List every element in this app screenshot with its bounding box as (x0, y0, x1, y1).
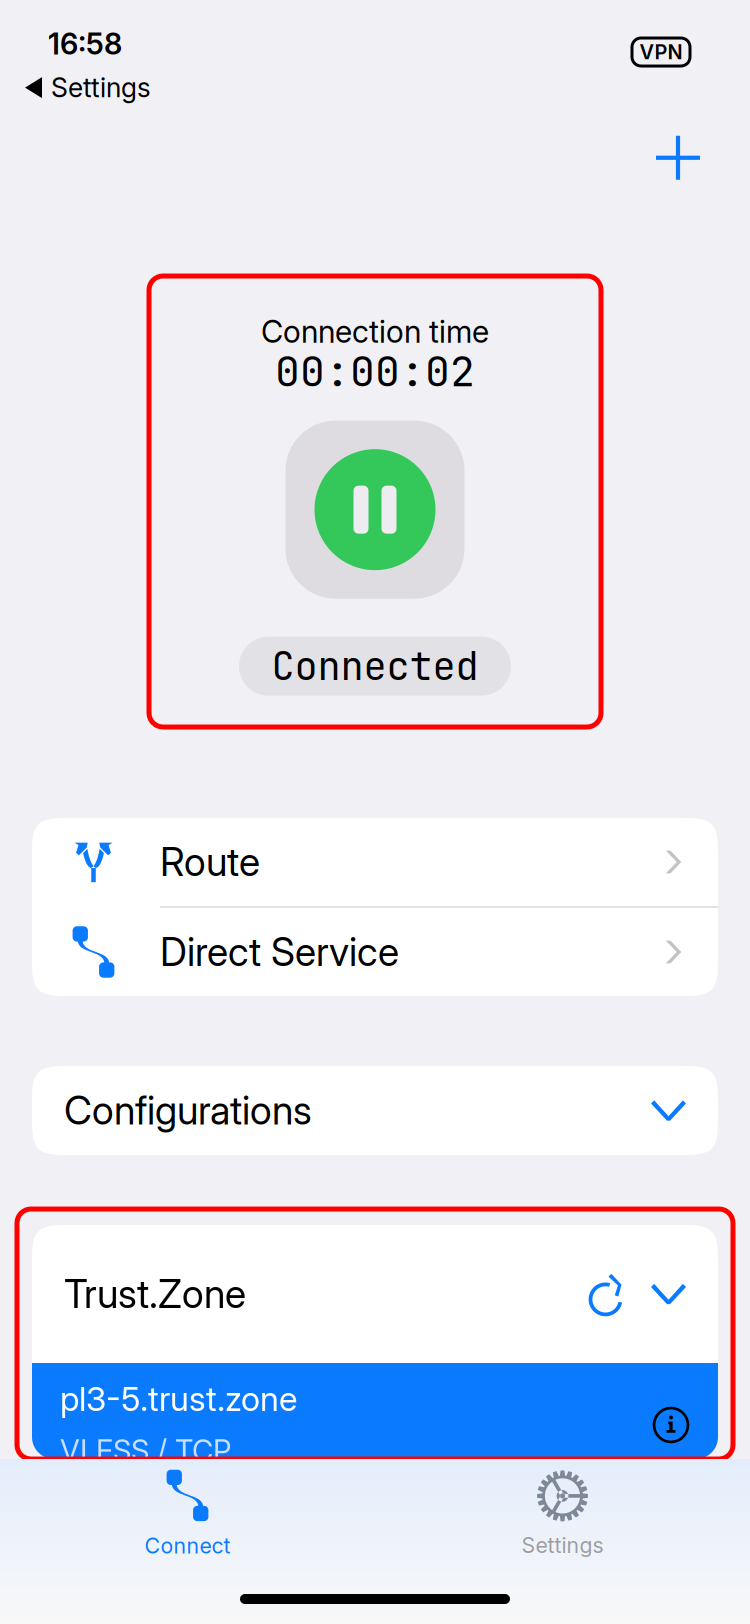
staticText: Connect (144, 1533, 230, 1559)
staticText: Trust.Zone (64, 1271, 246, 1317)
staticText: VLESS / TCP (60, 1433, 231, 1468)
staticText: Route (160, 839, 260, 885)
staticText: VPN (639, 40, 682, 64)
button[interactable]: Configurations (32, 1066, 718, 1155)
staticText: Connection time (261, 313, 489, 350)
button[interactable]: Server info (653, 1407, 689, 1443)
button[interactable]: Settings (375, 1470, 750, 1558)
staticText: Settings (51, 71, 151, 104)
staticText: Connected (271, 641, 478, 692)
button[interactable]: Route (32, 818, 718, 906)
button[interactable]: Disconnect (285, 421, 464, 599)
staticText: 16:58 (48, 26, 122, 61)
button[interactable]: Connect (0, 1470, 375, 1559)
button[interactable]: Add configuration (642, 122, 714, 194)
staticText: Configurations (64, 1087, 312, 1134)
staticText: 00:00:02 (275, 344, 475, 399)
button[interactable]: Refresh (590, 1273, 623, 1315)
staticText: pl3-5.trust.zone (60, 1379, 297, 1419)
staticText: Settings (521, 1532, 603, 1558)
button[interactable]: Collapse (651, 1284, 686, 1304)
staticText: Direct Service (160, 929, 399, 975)
button[interactable]: Connected (239, 637, 511, 696)
button[interactable]: Direct Service (32, 908, 718, 996)
